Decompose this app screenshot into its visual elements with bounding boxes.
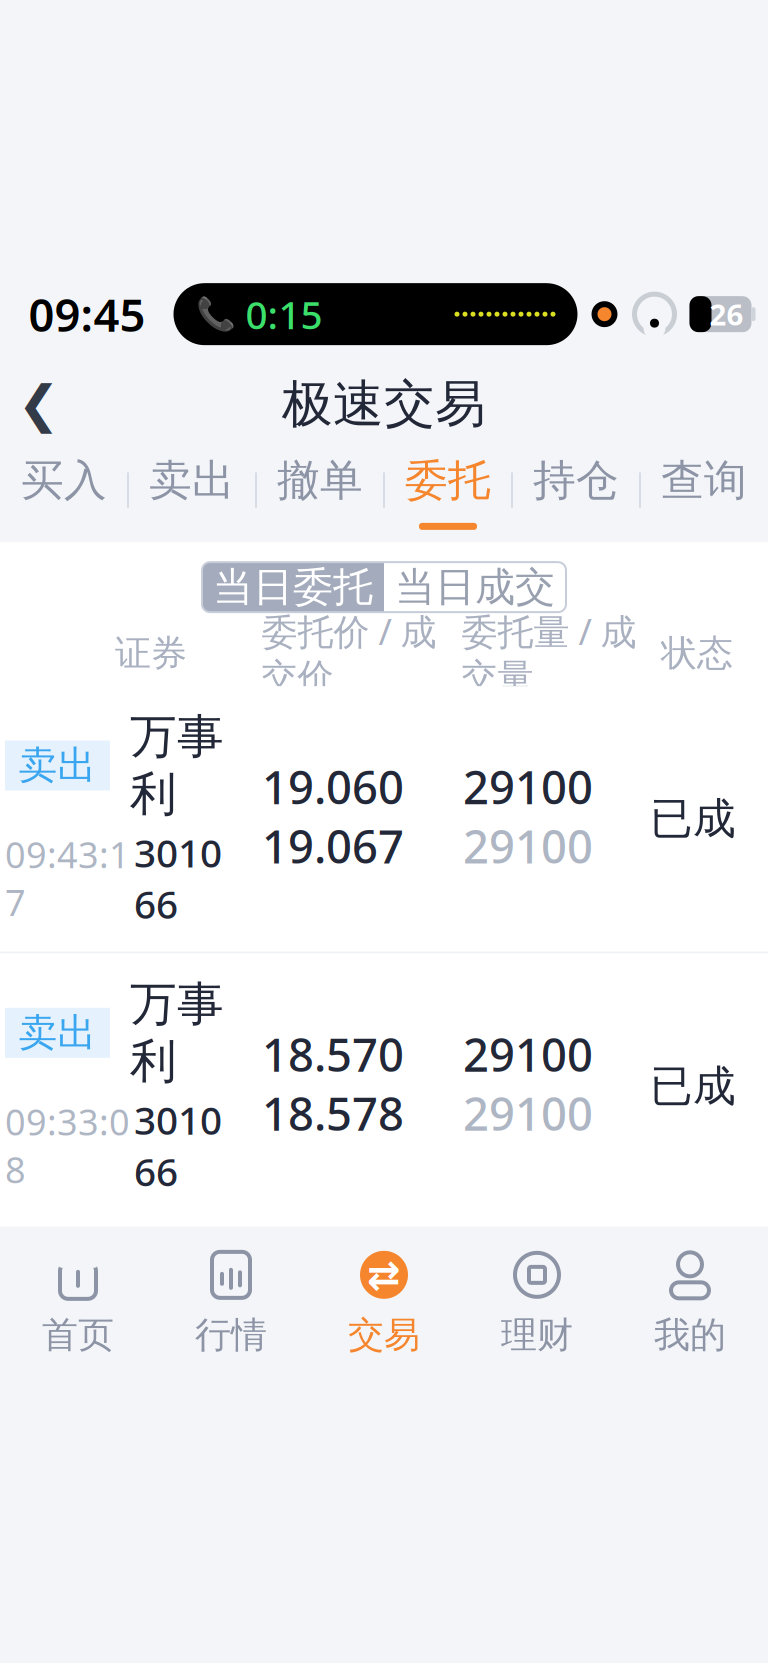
staticText: 301066 <box>134 1094 222 1197</box>
staticText: 26 <box>709 295 743 334</box>
staticText: 极速交易 <box>282 373 486 435</box>
staticText: 29100 <box>463 1083 593 1143</box>
button[interactable]: 行情 <box>154 1227 307 1397</box>
staticText: ⇄ <box>367 1252 401 1297</box>
staticText: 证券 <box>115 631 187 675</box>
staticText: 19.060 <box>262 757 404 817</box>
staticText: 万事利 <box>130 708 224 823</box>
staticText: 理财 <box>501 1313 573 1357</box>
staticText: 📞 <box>195 296 235 332</box>
staticText: 0:15 <box>245 288 322 340</box>
staticText: 委托量 / 成交量 <box>461 607 636 699</box>
button[interactable]: 首页 <box>1 1227 154 1397</box>
staticText: 交易 <box>348 1313 420 1357</box>
staticText: 撤单 <box>277 454 363 507</box>
button[interactable]: Back <box>0 362 86 446</box>
staticText: 当日成交 <box>395 563 555 612</box>
staticText: 29100 <box>463 1024 593 1084</box>
button[interactable]: 买入 <box>9 448 119 532</box>
staticText: 首页 <box>42 1313 114 1357</box>
staticText: 29100 <box>463 757 593 817</box>
button[interactable]: 持仓 <box>521 448 631 532</box>
staticText: 卖出 <box>18 742 96 789</box>
staticText: 委托 <box>405 454 491 507</box>
staticText: 持仓 <box>533 454 619 507</box>
button[interactable]: 我的 <box>613 1227 766 1397</box>
staticText: 我的 <box>654 1313 726 1357</box>
staticText: 09:43:17 <box>5 830 130 926</box>
staticText: 查询 <box>661 454 747 507</box>
staticText: 09:33:08 <box>5 1098 130 1193</box>
staticText: 18.570 <box>262 1024 404 1084</box>
staticText: 状态 <box>661 631 733 675</box>
staticText: 卖出 <box>149 454 235 507</box>
staticText: 19.067 <box>262 816 404 876</box>
staticText: 已成 <box>650 1060 736 1112</box>
staticText: 当日委托 <box>213 563 373 612</box>
staticText: 行情 <box>195 1313 267 1357</box>
button[interactable]: 撤单 <box>265 448 375 532</box>
staticText: 09:45 <box>28 284 145 344</box>
button[interactable]: ⇄ <box>307 1227 460 1397</box>
button[interactable]: 当日成交 <box>384 562 566 612</box>
staticText: 万事利 <box>130 975 224 1090</box>
button[interactable]: 查询 <box>649 448 759 532</box>
staticText: 已成 <box>650 793 736 845</box>
button[interactable]: 卖出 <box>0 686 768 951</box>
button[interactable]: 委托 <box>393 448 503 532</box>
staticText: 买入 <box>21 454 107 507</box>
button[interactable]: 理财 <box>460 1227 613 1397</box>
staticText: 301066 <box>134 827 222 929</box>
button[interactable]: 卖出 <box>0 953 768 1219</box>
staticText: 委托价 / 成交价 <box>261 607 436 699</box>
staticText: ❮ <box>17 375 59 433</box>
staticText: 卖出 <box>18 1009 96 1057</box>
button[interactable]: 卖出 <box>137 448 247 532</box>
staticText: 18.578 <box>262 1083 404 1143</box>
staticText: 29100 <box>463 816 593 876</box>
button[interactable]: 当日委托 <box>202 562 384 612</box>
